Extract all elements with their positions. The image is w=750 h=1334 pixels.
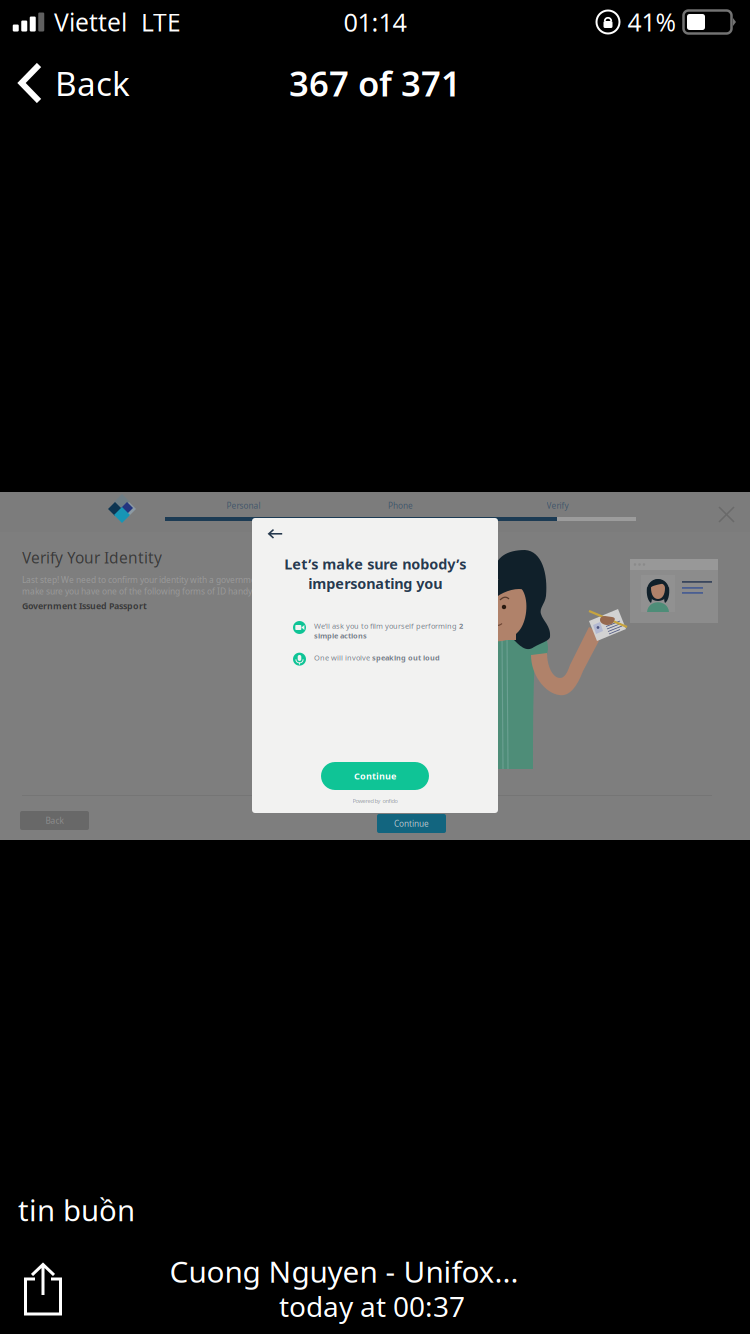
staticText: LTE <box>141 5 181 39</box>
staticText: Let’s make sure nobody’s impersonating y… <box>284 554 466 593</box>
staticText: Powered by onfido <box>352 797 397 805</box>
staticText: 41% <box>627 5 675 39</box>
staticText: Continue <box>354 770 396 782</box>
staticText: 01:14 <box>343 5 406 39</box>
staticText: Personal <box>226 500 260 511</box>
staticText: Back <box>45 815 63 826</box>
staticText: Verify <box>546 500 568 511</box>
button[interactable]: Back <box>20 811 89 830</box>
button[interactable]: Continue <box>377 814 446 833</box>
button[interactable]: Share <box>14 1253 72 1326</box>
staticText: 367 of 371 <box>289 59 461 107</box>
button[interactable]: Continue <box>321 762 429 790</box>
button[interactable]: Back <box>261 522 290 546</box>
staticText: Phone <box>388 500 413 511</box>
staticText: Last step! We need to confirm your ident… <box>22 574 332 597</box>
staticText: Viettel <box>54 5 127 39</box>
staticText: Cuong Nguyen - Unifox... <box>169 1251 518 1291</box>
button[interactable]: Back <box>0 55 130 111</box>
staticText: today at 00:37 <box>279 1287 465 1325</box>
staticText: tin buồn <box>18 1190 135 1230</box>
staticText: One will involve speaking out loud <box>314 653 440 662</box>
staticText: Government Issued Passport <box>22 600 147 612</box>
staticText: Continue <box>394 818 429 829</box>
staticText: We’ll ask you to film yourself performin… <box>314 621 463 641</box>
button[interactable]: Close <box>713 501 740 528</box>
staticText: Back <box>55 60 130 106</box>
staticText: Verify Your Identity <box>22 547 162 568</box>
